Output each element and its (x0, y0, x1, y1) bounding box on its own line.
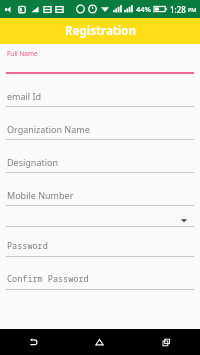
button[interactable]: Select option (6, 214, 194, 227)
staticText: email Id (7, 90, 42, 102)
staticText: Password (7, 240, 48, 252)
staticText: 1:28 (170, 4, 186, 15)
button[interactable]: Full Name (6, 49, 194, 74)
button[interactable]: Back (0, 329, 66, 355)
staticText: Full Name (7, 49, 38, 58)
button[interactable]: Password (6, 240, 194, 257)
staticText: Confirm Password (7, 273, 89, 285)
staticText: Designation (7, 156, 59, 168)
staticText: PM (188, 6, 197, 13)
staticText: Mobile Number (7, 189, 74, 201)
staticText: Registration (65, 23, 136, 39)
button[interactable]: Confirm Password (6, 273, 194, 290)
button[interactable]: Mobile Number (6, 189, 194, 206)
staticText: Organization Name (7, 123, 90, 135)
button[interactable]: Designation (6, 156, 194, 173)
button[interactable]: email Id (6, 90, 194, 107)
staticText: 44% (136, 4, 151, 14)
button[interactable]: Home (66, 329, 133, 355)
button[interactable]: Recent apps (133, 329, 200, 355)
button[interactable]: Organization Name (6, 123, 194, 140)
